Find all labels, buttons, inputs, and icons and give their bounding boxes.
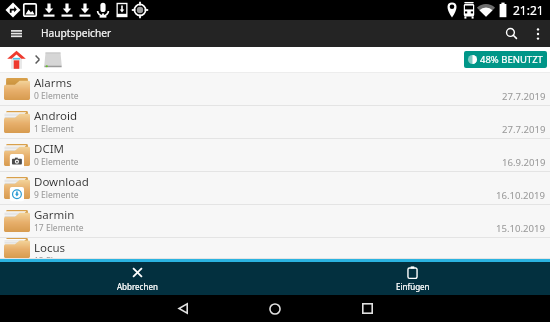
staticText: Abbrechen xyxy=(117,281,158,292)
staticText: Android xyxy=(34,108,78,124)
button[interactable]: DCIM xyxy=(0,139,550,172)
button[interactable]: Search xyxy=(496,20,526,47)
button[interactable]: Einfügen xyxy=(275,262,550,295)
button[interactable]: Internal storage xyxy=(42,47,64,72)
staticText: Einfügen xyxy=(396,281,430,292)
button[interactable]: Locus xyxy=(0,238,550,259)
staticText: Locus xyxy=(34,240,66,256)
staticText: 48% BENUTZT xyxy=(480,53,543,66)
staticText: Garmin xyxy=(34,207,75,223)
staticText: 27.7.2019 xyxy=(502,90,546,103)
staticText: 0 Elemente xyxy=(34,90,79,102)
button[interactable]: Android xyxy=(0,106,550,139)
staticText: 16.9.2019 xyxy=(502,156,546,169)
staticText: DCIM xyxy=(34,141,64,157)
staticText: 16.10.2019 xyxy=(496,189,546,202)
staticText: 21:21 xyxy=(513,2,544,18)
staticText: 12 Elemente xyxy=(34,255,84,258)
button[interactable]: Alarms xyxy=(0,73,550,106)
staticText: 9 Elemente xyxy=(34,189,79,201)
staticText: 1 Element xyxy=(34,123,74,135)
button[interactable]: 48% BENUTZT xyxy=(464,51,547,68)
staticText: Download xyxy=(34,174,89,190)
button[interactable]: Abbrechen xyxy=(0,262,275,295)
staticText: 15.10.2019 xyxy=(496,222,546,235)
button[interactable]: More options xyxy=(526,20,550,47)
button[interactable]: Garmin xyxy=(0,205,550,238)
staticText: 27.7.2019 xyxy=(502,123,546,136)
button[interactable]: Back xyxy=(155,295,211,322)
staticText: 17 Elemente xyxy=(34,222,84,234)
button[interactable]: Home xyxy=(0,47,32,72)
staticText: Hauptspeicher xyxy=(41,26,112,40)
button[interactable]: Recents xyxy=(339,295,395,322)
button[interactable]: Download xyxy=(0,172,550,205)
staticText: Alarms xyxy=(34,75,72,91)
staticText: 0 Elemente xyxy=(34,156,79,168)
button[interactable]: Home xyxy=(247,295,303,322)
button[interactable]: Menu xyxy=(0,20,32,47)
